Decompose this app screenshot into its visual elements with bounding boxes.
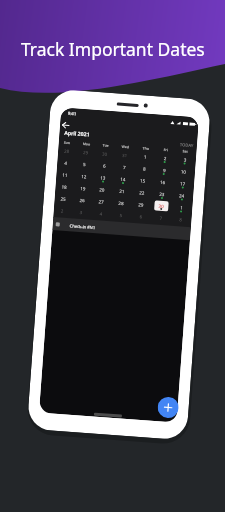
staticText: 2 bbox=[61, 208, 64, 214]
button[interactable]: 7 bbox=[114, 160, 134, 174]
staticText: April 2021 bbox=[64, 129, 91, 138]
staticText: 29 bbox=[83, 149, 89, 155]
button[interactable]: 2 bbox=[53, 204, 72, 217]
button[interactable]: 1 bbox=[135, 150, 155, 163]
staticText: 29 bbox=[138, 201, 145, 208]
button[interactable]: TODAY bbox=[180, 142, 194, 149]
staticText: 8 bbox=[143, 165, 146, 172]
staticText: Tue bbox=[102, 142, 110, 148]
button[interactable]: 10 bbox=[174, 165, 194, 178]
button[interactable]: Check-in #N1 bbox=[52, 217, 191, 240]
staticText: 30 bbox=[158, 203, 165, 209]
staticText: 8 bbox=[179, 216, 183, 222]
button[interactable]: 6 bbox=[94, 159, 115, 172]
button[interactable]: 5 bbox=[75, 157, 95, 171]
staticText: 1 bbox=[180, 204, 183, 210]
button[interactable]: 18 bbox=[55, 180, 74, 193]
staticText: Sun bbox=[64, 140, 71, 145]
staticText: 28 bbox=[118, 200, 125, 206]
button[interactable] bbox=[157, 396, 179, 419]
button[interactable]: 30 bbox=[151, 199, 172, 213]
button[interactable]: 30 bbox=[95, 147, 115, 160]
staticText: Sat bbox=[182, 148, 189, 154]
staticText: Mon bbox=[83, 141, 91, 147]
button[interactable]: 6 bbox=[130, 210, 151, 223]
staticText: 12 bbox=[81, 173, 88, 179]
staticText: 9:41 bbox=[68, 111, 77, 117]
button[interactable]: 11 bbox=[56, 168, 75, 181]
button[interactable]: 25 bbox=[54, 192, 73, 205]
button[interactable]: 17 bbox=[173, 177, 193, 190]
staticText: 28 bbox=[64, 148, 70, 154]
staticText: 2 bbox=[164, 155, 167, 161]
staticText: 17 bbox=[180, 180, 186, 187]
staticText: 19 bbox=[80, 185, 87, 191]
button[interactable]: 7 bbox=[150, 211, 171, 225]
staticText: 7 bbox=[123, 164, 126, 170]
staticText: 6 bbox=[139, 213, 143, 220]
button[interactable]: 9 bbox=[154, 163, 174, 177]
staticText: 16 bbox=[160, 179, 166, 185]
button[interactable]: 14 bbox=[113, 172, 134, 186]
button[interactable]: 15 bbox=[133, 174, 154, 187]
staticText: 3 bbox=[79, 209, 83, 215]
button[interactable]: 3 bbox=[174, 153, 195, 166]
staticText: Wed bbox=[121, 144, 130, 149]
button[interactable]: 19 bbox=[73, 181, 93, 195]
button[interactable]: 1 bbox=[171, 201, 192, 214]
staticText: 6 bbox=[103, 163, 106, 169]
staticText: 5 bbox=[119, 212, 123, 218]
staticText: 4 bbox=[99, 210, 103, 217]
staticText: 11 bbox=[62, 172, 69, 178]
button[interactable]: 29 bbox=[131, 198, 152, 211]
button[interactable]: 23 bbox=[152, 187, 173, 201]
button[interactable]: 16 bbox=[153, 175, 173, 189]
staticText: 1 bbox=[144, 153, 147, 160]
staticText: Fri bbox=[163, 147, 169, 152]
staticText: 10 bbox=[181, 168, 187, 175]
staticText: Track Important Dates bbox=[21, 37, 205, 61]
button[interactable]: 20 bbox=[92, 183, 113, 196]
button[interactable]: 31 bbox=[115, 148, 135, 162]
staticText: Check-in #N1 bbox=[69, 223, 96, 230]
button[interactable]: 24 bbox=[172, 189, 193, 202]
staticText: 4 bbox=[64, 160, 67, 166]
staticText: 31 bbox=[122, 152, 128, 158]
staticText: 3 bbox=[184, 156, 187, 163]
staticText: 9 bbox=[163, 167, 166, 173]
staticText: 25 bbox=[60, 196, 67, 202]
staticText: 22 bbox=[139, 189, 145, 196]
staticText: 15 bbox=[140, 177, 146, 184]
staticText: 30 bbox=[102, 150, 108, 157]
button[interactable]: 13 bbox=[93, 171, 114, 184]
staticText: 24 bbox=[179, 192, 185, 199]
staticText: 21 bbox=[119, 188, 126, 194]
button[interactable]: 26 bbox=[72, 193, 92, 207]
button[interactable]: 27 bbox=[91, 195, 112, 208]
button[interactable]: 28 bbox=[111, 196, 132, 210]
staticText: 5 bbox=[83, 161, 86, 167]
staticText: 7 bbox=[159, 215, 163, 221]
staticText: 27 bbox=[98, 198, 105, 205]
button[interactable]: 28 bbox=[58, 144, 77, 158]
staticText: 14 bbox=[120, 176, 126, 182]
button[interactable]: 2 bbox=[154, 151, 175, 165]
staticText: 26 bbox=[79, 197, 86, 203]
button[interactable]: 22 bbox=[132, 186, 153, 199]
staticText: 23 bbox=[159, 191, 165, 197]
staticText: 20 bbox=[99, 186, 106, 193]
button[interactable]: 21 bbox=[112, 184, 133, 198]
staticText: Thu bbox=[142, 145, 150, 151]
staticText: 13 bbox=[100, 174, 106, 181]
button[interactable]: 12 bbox=[74, 169, 94, 183]
staticText: 18 bbox=[61, 184, 68, 190]
button[interactable]: 8 bbox=[170, 213, 191, 226]
button[interactable]: 5 bbox=[110, 208, 131, 222]
button[interactable]: 4 bbox=[90, 207, 111, 220]
button[interactable] bbox=[62, 121, 69, 129]
button[interactable]: 29 bbox=[76, 146, 95, 159]
button[interactable]: 4 bbox=[57, 156, 76, 169]
button[interactable]: 8 bbox=[134, 162, 154, 175]
button[interactable]: 3 bbox=[71, 205, 91, 219]
